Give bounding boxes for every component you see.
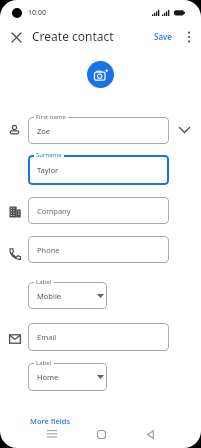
button[interactable] bbox=[5, 26, 27, 48]
staticText: Phone bbox=[37, 245, 60, 255]
button[interactable]: Home bbox=[28, 363, 107, 391]
staticText: Create contact bbox=[32, 28, 114, 44]
staticText: Zoe bbox=[37, 126, 51, 136]
staticText: Save bbox=[154, 31, 172, 42]
staticText: Label bbox=[36, 359, 52, 367]
staticText: Mobile bbox=[37, 291, 62, 301]
button[interactable] bbox=[181, 26, 197, 48]
staticText: 10:00 bbox=[28, 8, 46, 18]
button[interactable] bbox=[89, 424, 113, 444]
staticText: More fields bbox=[30, 416, 71, 426]
staticText: Taylor bbox=[37, 165, 59, 175]
staticText: Surname bbox=[36, 151, 62, 159]
button[interactable]: Email bbox=[28, 323, 169, 351]
staticText: Home bbox=[37, 372, 59, 382]
button[interactable]: Zoe bbox=[28, 117, 169, 144]
button[interactable] bbox=[40, 424, 64, 444]
button[interactable] bbox=[87, 61, 114, 88]
button[interactable]: Save bbox=[149, 28, 176, 44]
button[interactable] bbox=[138, 424, 162, 444]
staticText: Company bbox=[37, 206, 71, 216]
button[interactable]: Phone bbox=[28, 236, 169, 263]
button[interactable]: More fields bbox=[28, 413, 78, 429]
staticText: First name bbox=[36, 113, 66, 121]
button[interactable]: Taylor bbox=[28, 155, 169, 185]
button[interactable] bbox=[174, 118, 194, 142]
button[interactable]: Mobile bbox=[28, 282, 107, 309]
button[interactable]: Company bbox=[28, 197, 169, 224]
staticText: Email bbox=[37, 332, 57, 342]
staticText: Label bbox=[36, 278, 52, 286]
